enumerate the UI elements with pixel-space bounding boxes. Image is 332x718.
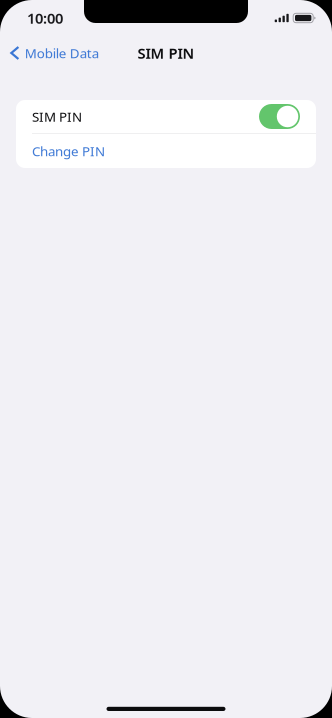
staticText: 10:00 bbox=[27, 8, 63, 28]
button[interactable]: SIM PIN bbox=[259, 104, 300, 129]
staticText: Change PIN bbox=[32, 142, 105, 160]
staticText: SIM PIN bbox=[137, 43, 194, 63]
staticText: SIM PIN bbox=[32, 108, 82, 125]
button[interactable]: Change PIN bbox=[16, 134, 316, 168]
button[interactable]: Mobile Data bbox=[0, 39, 107, 67]
staticText: Mobile Data bbox=[25, 44, 99, 62]
